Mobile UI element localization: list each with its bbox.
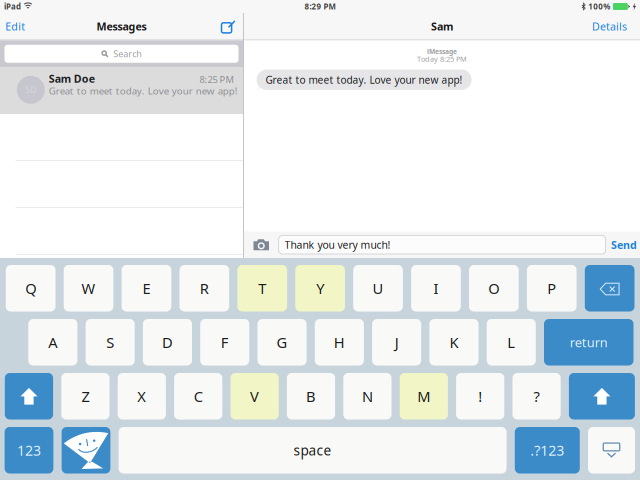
button[interactable]: X — [118, 373, 166, 419]
button[interactable]: Edit — [0, 13, 33, 39]
staticText: .?123 — [530, 441, 564, 460]
staticText: V — [250, 386, 259, 406]
button[interactable]: ? — [512, 373, 561, 419]
button[interactable]: .?123 — [515, 427, 580, 473]
staticText: D — [162, 332, 173, 352]
button[interactable]: Hide Keyboard — [588, 427, 635, 473]
staticText: 8:29 PM — [304, 1, 335, 12]
staticText: Search — [113, 48, 142, 60]
button[interactable]: Camera — [244, 239, 269, 250]
staticText: Great to meet today. Love your new app! — [49, 84, 238, 97]
button[interactable]: A — [28, 319, 77, 365]
staticText: G — [277, 332, 288, 352]
button[interactable]: Z — [61, 373, 109, 419]
button[interactable]: Send — [606, 237, 640, 252]
button[interactable]: D — [143, 319, 192, 365]
staticText: Great to meet today. Love your new app! — [266, 73, 463, 87]
button[interactable]: Shift — [5, 373, 53, 419]
button[interactable]: L — [487, 319, 536, 365]
button[interactable]: F — [200, 319, 249, 365]
staticText: E — [142, 278, 150, 298]
button[interactable]: E — [122, 265, 171, 311]
button[interactable]: C — [174, 373, 222, 419]
button[interactable]: New Message — [217, 13, 243, 39]
staticText: space — [294, 441, 332, 459]
staticText: Thank you very much! — [285, 238, 391, 252]
staticText: Sam — [431, 19, 453, 33]
button[interactable]: B — [287, 373, 335, 419]
staticText: A — [48, 332, 57, 352]
button[interactable]: return — [544, 319, 633, 365]
staticText: J — [395, 332, 399, 352]
staticText: Messages — [96, 19, 146, 33]
staticText: B — [306, 386, 316, 406]
button[interactable]: R — [179, 265, 229, 311]
staticText: W — [82, 278, 96, 298]
staticText: U — [373, 278, 384, 298]
button[interactable]: N — [343, 373, 391, 419]
button[interactable]: W — [64, 265, 113, 311]
button[interactable]: T — [237, 265, 287, 311]
staticText: 123 — [17, 441, 41, 460]
staticText: L — [507, 332, 515, 352]
staticText: Send — [611, 237, 637, 252]
button[interactable]: J — [372, 319, 421, 365]
staticText: N — [362, 386, 373, 406]
button[interactable]: H — [315, 319, 364, 365]
staticText: Sam Doe — [49, 71, 95, 86]
staticText: iPad — [4, 1, 21, 12]
staticText: X — [137, 386, 146, 406]
staticText: K — [449, 332, 458, 352]
button[interactable]: V — [230, 373, 279, 419]
button[interactable]: SD — [0, 67, 243, 114]
staticText: H — [334, 332, 345, 352]
staticText: return — [570, 333, 608, 351]
button[interactable]: O — [469, 265, 519, 311]
button[interactable]: I — [411, 265, 461, 311]
staticText: Q — [25, 278, 36, 298]
staticText: T — [258, 278, 266, 298]
staticText: I — [433, 278, 438, 298]
staticText: iMessage — [427, 47, 457, 56]
button[interactable]: Emoji — [62, 427, 110, 473]
staticText: Z — [81, 386, 89, 406]
button[interactable]: space — [119, 427, 507, 473]
staticText: Edit — [5, 19, 25, 33]
staticText: Details — [592, 19, 627, 33]
staticText: F — [221, 332, 229, 352]
button[interactable]: Delete — [585, 265, 634, 311]
button[interactable]: U — [353, 265, 403, 311]
button[interactable]: Details — [584, 13, 640, 39]
button[interactable]: Shift — [569, 373, 635, 419]
button[interactable]: Search — [4, 45, 238, 63]
button[interactable]: Q — [6, 265, 55, 311]
staticText: 100% — [588, 1, 610, 12]
button[interactable]: ! — [456, 373, 504, 419]
staticText: Y — [316, 278, 324, 298]
staticText: S — [106, 332, 114, 352]
staticText: Today 8:25 PM — [417, 54, 467, 64]
staticText: R — [200, 278, 209, 298]
button[interactable]: P — [527, 265, 577, 311]
button[interactable]: S — [86, 319, 135, 365]
button[interactable]: 123 — [5, 427, 53, 473]
staticText: C — [194, 386, 203, 406]
button[interactable]: K — [429, 319, 478, 365]
button[interactable]: G — [257, 319, 307, 365]
staticText: O — [488, 278, 499, 298]
staticText: P — [547, 278, 556, 298]
staticText: M — [417, 386, 430, 406]
staticText: SD — [25, 84, 36, 96]
staticText: 8:25 PM — [199, 73, 233, 86]
staticText: ! — [478, 386, 482, 406]
button[interactable]: M — [400, 373, 448, 419]
button[interactable]: Y — [295, 265, 345, 311]
staticText: ? — [534, 386, 540, 406]
